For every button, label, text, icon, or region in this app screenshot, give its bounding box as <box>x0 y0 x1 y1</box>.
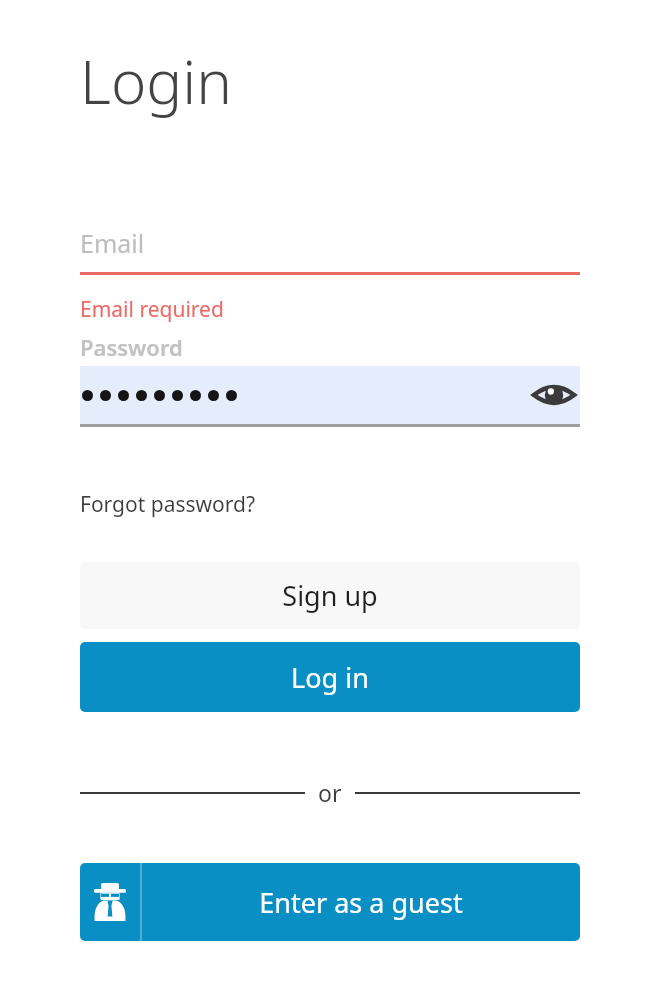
staticText: Log in <box>291 659 369 696</box>
button[interactable]: Sign up <box>80 562 580 629</box>
staticText: Email required <box>80 295 224 324</box>
button[interactable]: Show password <box>80 366 580 424</box>
button[interactable]: Show password <box>528 369 580 421</box>
staticText: Sign up <box>282 577 378 614</box>
button[interactable]: Forgot password? <box>80 490 256 519</box>
button[interactable]: Enter as a guest <box>80 863 580 941</box>
staticText: Login <box>80 40 232 122</box>
button[interactable]: Log in <box>80 642 580 712</box>
button[interactable]: Email <box>80 214 580 272</box>
staticText: Forgot password? <box>80 490 256 519</box>
staticText: Password <box>80 332 183 362</box>
staticText: or <box>318 777 342 808</box>
staticText: Enter as a guest <box>259 884 463 921</box>
staticText: Email <box>80 226 145 260</box>
